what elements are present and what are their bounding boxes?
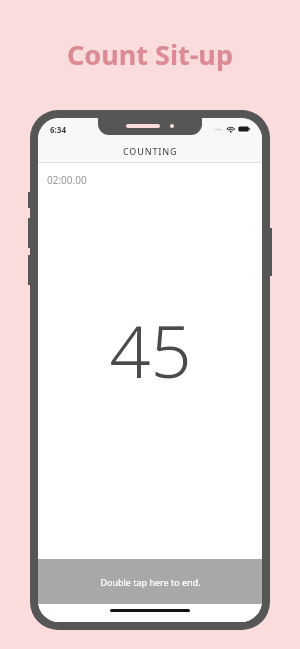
staticText: Count Sit-up	[67, 36, 233, 73]
staticText: 45	[109, 301, 192, 399]
staticText: 02:00.00	[47, 173, 87, 187]
staticText: COUNTING	[123, 145, 178, 157]
button[interactable]: Double tap here to end.	[38, 559, 262, 604]
staticText: 6:34	[50, 124, 66, 135]
staticText: Double tap here to end.	[100, 576, 201, 588]
other: Home indicator	[110, 609, 190, 612]
